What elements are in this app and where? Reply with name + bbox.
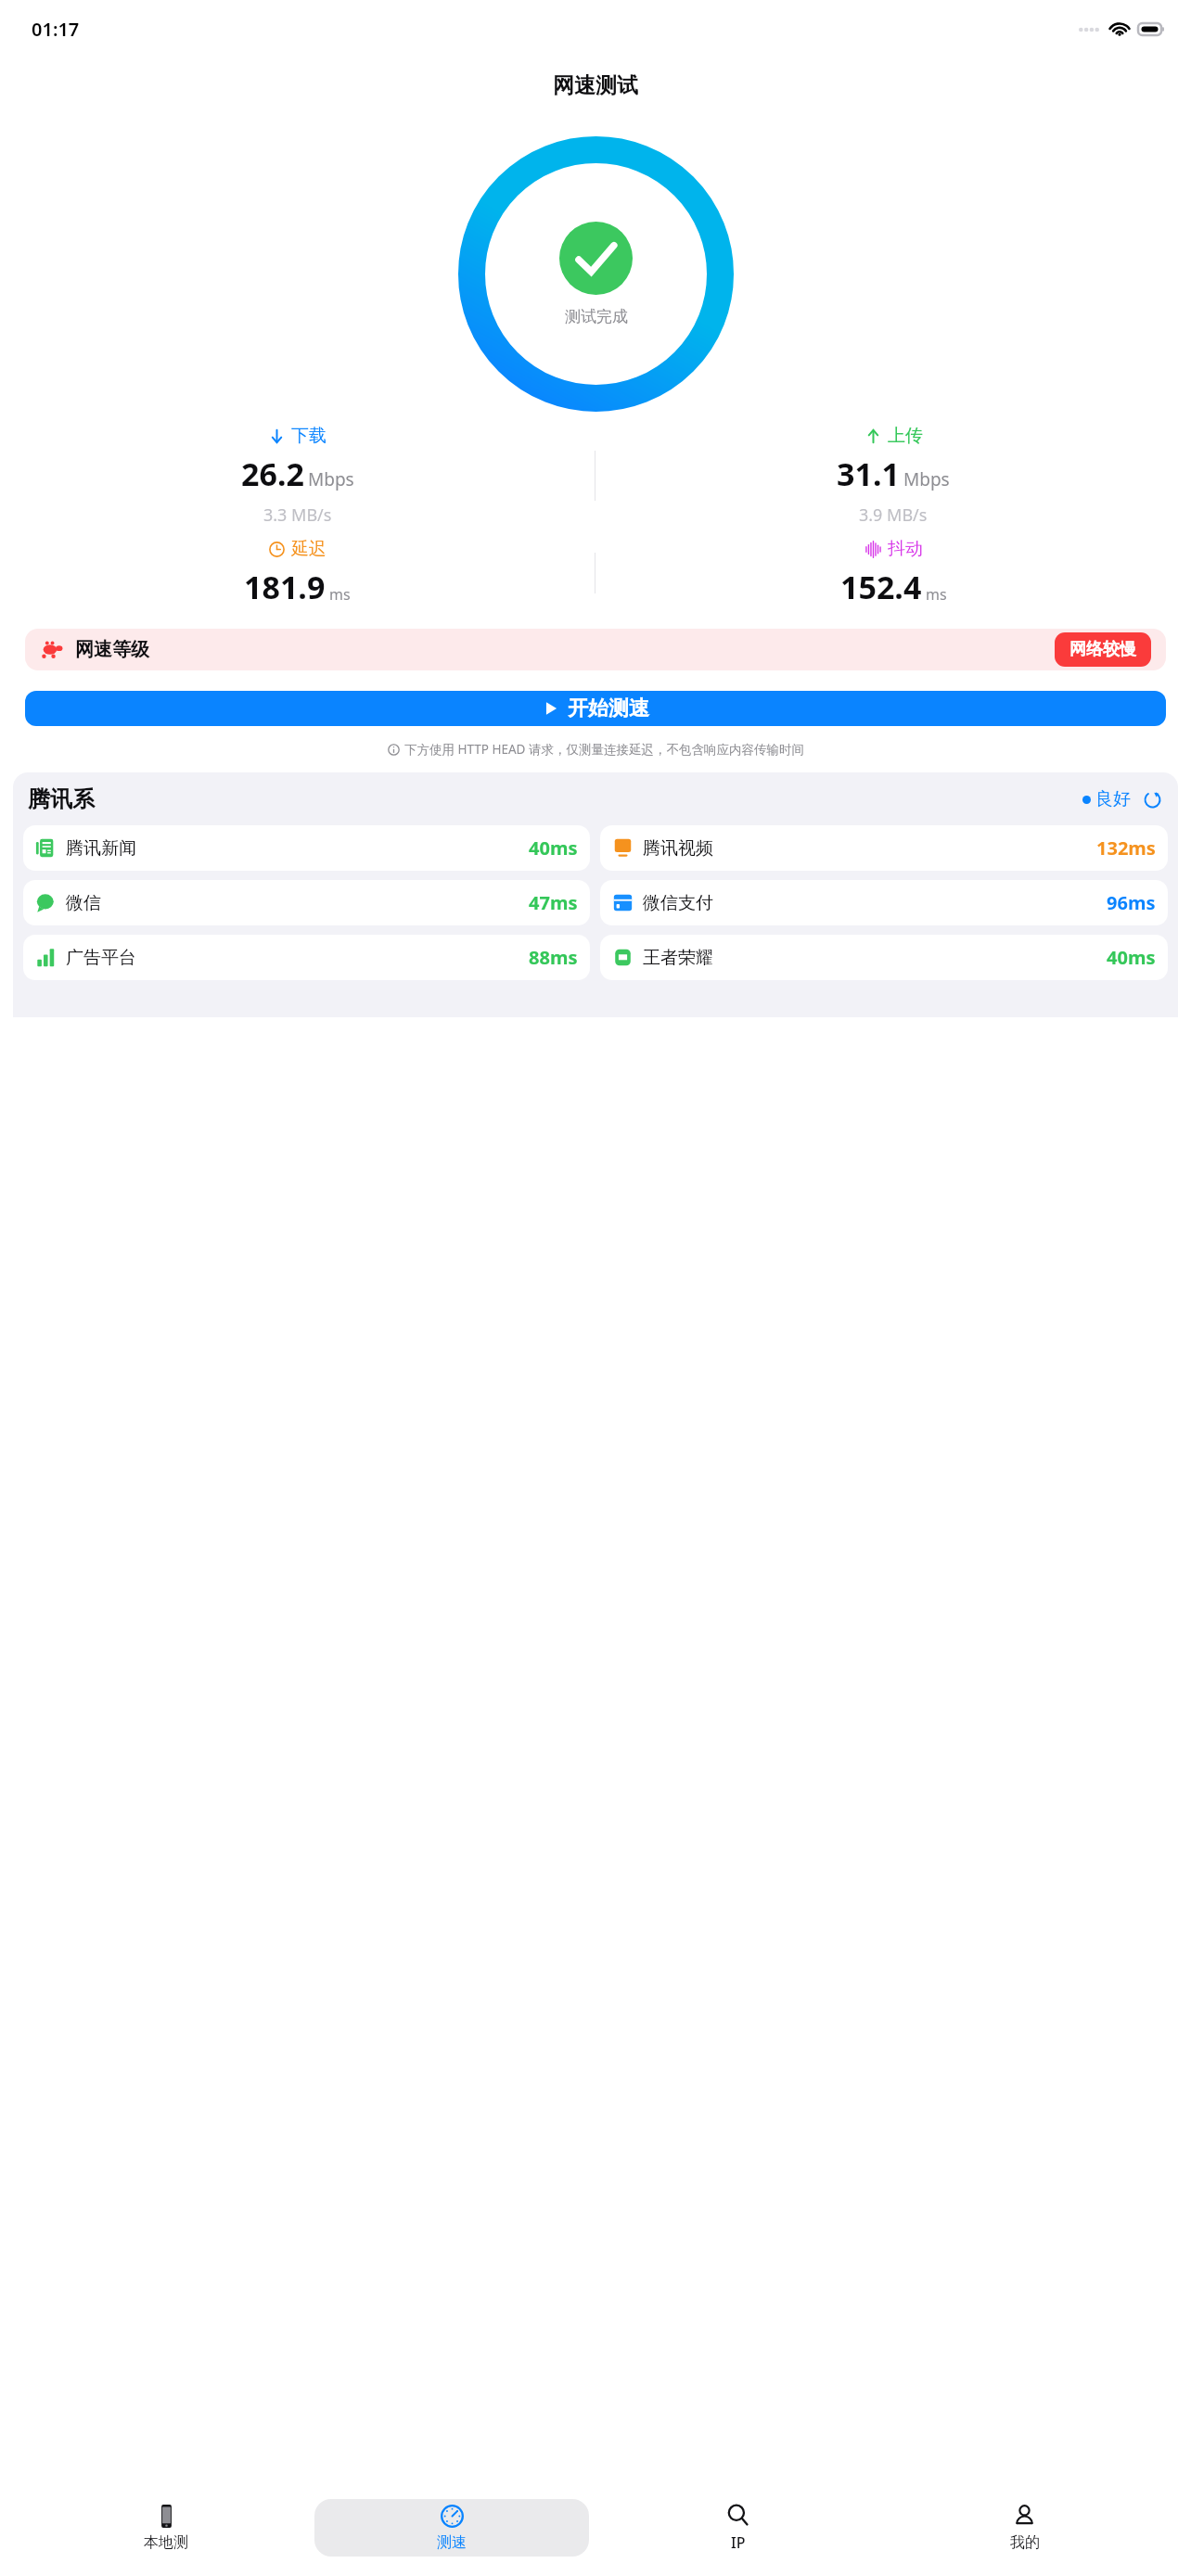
staticText: Mbps (903, 467, 950, 491)
staticText: 3.3 MB/s (263, 504, 332, 527)
staticText: ms (329, 584, 351, 605)
staticText: ms (926, 584, 947, 605)
staticText: 我的 (1010, 2533, 1040, 2552)
staticText: 40ms (529, 835, 578, 861)
staticText: 开始测速 (568, 695, 649, 721)
staticText: 腾讯视频 (643, 837, 713, 860)
staticText: 王者荣耀 (643, 947, 713, 969)
staticText: 上传 (888, 425, 923, 447)
button[interactable]: 本地测 (29, 2499, 303, 2557)
staticText: 下方使用 HTTP HEAD 请求，仅测量连接延迟，不包含响应内容传输时间 (404, 741, 804, 758)
button[interactable]: 网速等级 (25, 629, 1166, 670)
staticText: 微信支付 (643, 892, 713, 914)
staticText: 腾讯系 (28, 785, 95, 813)
button[interactable]: 开始测速 (25, 691, 1166, 726)
staticText: IP (731, 2532, 746, 2553)
staticText: 网速等级 (75, 638, 149, 661)
button[interactable]: 王者荣耀 (600, 935, 1168, 980)
button[interactable]: 广告平台 (23, 935, 590, 980)
staticText: 下载 (291, 425, 327, 447)
button[interactable]: IP (600, 2499, 876, 2557)
staticText: 31.1 (837, 453, 900, 495)
staticText: 01:17 (32, 17, 80, 42)
staticText: 88ms (529, 945, 578, 970)
staticText: 26.2 (241, 453, 304, 495)
button[interactable]: 微信支付 (600, 880, 1168, 925)
button[interactable]: 腾讯新闻 (23, 825, 590, 871)
button[interactable]: 刷新 (1141, 788, 1163, 810)
staticText: 47ms (529, 890, 578, 915)
staticText: 腾讯新闻 (66, 837, 136, 860)
staticText: 网速测试 (553, 72, 638, 99)
staticText: 网络较慢 (1069, 639, 1136, 660)
staticText: 抖动 (888, 538, 923, 560)
staticText: 测速 (437, 2533, 467, 2552)
staticText: 152.4 (840, 566, 922, 608)
staticText: 3.9 MB/s (859, 504, 928, 527)
staticText: 181.9 (244, 566, 326, 608)
staticText: 测试完成 (565, 307, 628, 326)
staticText: 40ms (1107, 945, 1156, 970)
staticText: 延迟 (291, 538, 327, 560)
staticText: 本地测 (144, 2533, 188, 2552)
button[interactable]: 测速 (314, 2499, 589, 2557)
staticText: 96ms (1107, 890, 1156, 915)
staticText: 132ms (1096, 835, 1156, 861)
staticText: 广告平台 (66, 947, 136, 969)
button[interactable]: 微信 (23, 880, 590, 925)
staticText: Mbps (308, 467, 354, 491)
staticText: 良好 (1095, 788, 1131, 810)
button[interactable]: 腾讯视频 (600, 825, 1168, 871)
staticText: 微信 (66, 892, 101, 914)
button[interactable]: 我的 (887, 2499, 1162, 2557)
